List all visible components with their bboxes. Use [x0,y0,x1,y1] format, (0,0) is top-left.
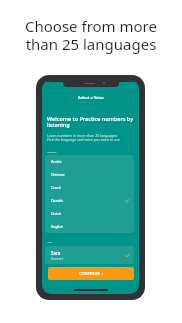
button[interactable]: Chinese [45,168,134,181]
button[interactable]: Czech [45,181,134,194]
button[interactable]: Danish [45,194,134,207]
staticText: Dutch [51,211,62,216]
button[interactable]: Dutch [45,207,134,220]
button[interactable]: Select a Voice [42,93,139,101]
button[interactable]: Sara [45,246,134,264]
staticText: Sara [51,250,61,256]
staticText: Voice [47,241,52,244]
staticText: Select a Voice [78,95,104,100]
button[interactable]: CONTINUE › [48,267,134,280]
button[interactable]: English [45,220,134,233]
staticText: Danish [51,198,63,203]
staticText: Choose from more than 25 languages [25,16,157,54]
staticText: Arabic [51,159,62,164]
staticText: Welcome to Practice numbers by listening [47,115,134,128]
staticText: Denmark [51,257,64,261]
staticText: Chinese [51,172,65,177]
staticText: Learn numbers in more than 25 languages … [47,133,120,142]
staticText: Czech [51,185,61,190]
staticText: CONTINUE › [79,271,104,276]
staticText: Language [47,151,57,154]
staticText: English [51,224,64,229]
button[interactable]: Arabic [45,155,134,168]
